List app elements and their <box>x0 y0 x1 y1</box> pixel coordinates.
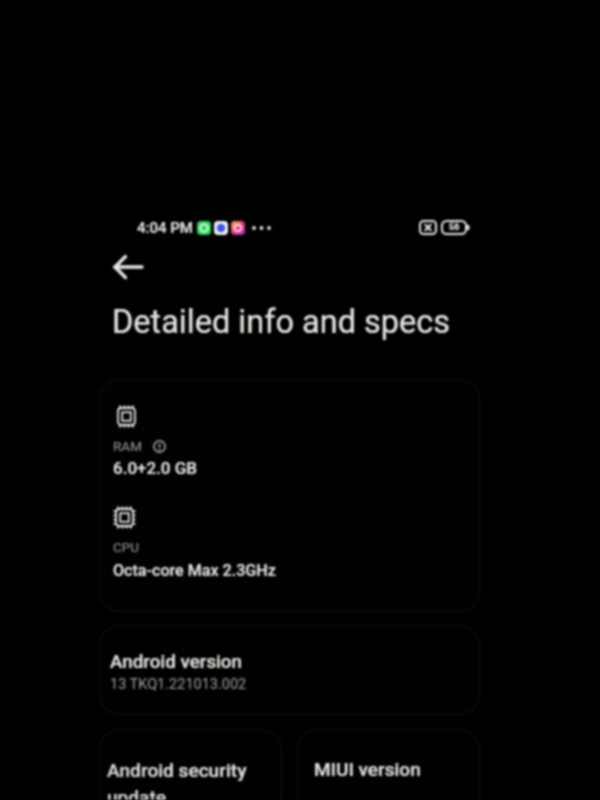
staticText: 56 <box>449 222 460 233</box>
button[interactable]: Android security update <box>99 729 282 800</box>
staticText: 13 TKQ1.221013.002 <box>110 676 247 693</box>
staticText: Android version <box>110 651 242 673</box>
staticText: CPU <box>113 539 140 555</box>
staticText: Detailed info and specs <box>112 303 451 341</box>
staticText: Android security update <box>107 759 247 800</box>
button[interactable]: Back <box>106 249 142 285</box>
staticText: 4:04 PM <box>137 219 193 237</box>
staticText: Octa-core Max 2.3GHz <box>113 561 276 580</box>
button[interactable]: RAM <box>99 379 480 612</box>
other: Battery 56 percent <box>442 221 470 234</box>
staticText: RAM <box>113 438 142 454</box>
button[interactable]: MIUI version <box>297 729 480 800</box>
other: Silent mode <box>419 221 437 234</box>
button[interactable]: Android version <box>99 625 480 715</box>
staticText: 6.0+2.0 GB <box>113 458 198 478</box>
staticText: MIUI version <box>314 758 421 780</box>
